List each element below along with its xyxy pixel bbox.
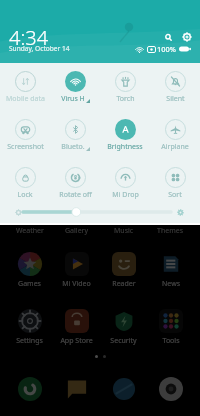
staticText: Music	[114, 226, 134, 235]
staticText: Themes	[157, 226, 184, 235]
button[interactable]: Settings	[178, 28, 195, 45]
staticText: Mobile data	[6, 94, 45, 104]
button[interactable]: Messages	[53, 377, 100, 401]
button[interactable]: Torch	[100, 71, 150, 104]
button[interactable]: Airplane	[150, 119, 200, 152]
staticText: Sunday, October 14	[9, 44, 70, 53]
button[interactable]: Browser	[100, 377, 147, 401]
staticText: Airplane	[161, 142, 189, 152]
staticText: App Store	[60, 336, 93, 346]
staticText: Sort	[168, 190, 182, 200]
button[interactable]: Sort	[150, 167, 200, 200]
button[interactable]: Screenshot	[0, 119, 50, 152]
staticText: Games	[18, 279, 41, 289]
button[interactable]: News	[147, 252, 194, 289]
staticText: Torch	[116, 94, 135, 104]
staticText: Security	[110, 336, 137, 346]
button[interactable]	[21, 206, 173, 218]
button[interactable]: Settings	[6, 309, 53, 346]
staticText: Reader	[112, 279, 136, 289]
button[interactable]: Lock	[0, 167, 50, 200]
button[interactable]: Search	[160, 29, 176, 45]
staticText: Mi Video	[62, 279, 91, 289]
button[interactable]: App Store	[53, 309, 100, 346]
button[interactable]: Rotate off	[50, 167, 100, 200]
staticText: Rotate off	[59, 190, 92, 200]
button[interactable]: Brightness settings	[175, 207, 185, 217]
staticText: 100%	[157, 44, 176, 54]
staticText: Tools	[162, 336, 180, 346]
staticText: Blueto.	[61, 142, 85, 152]
button[interactable]: Security	[100, 309, 147, 346]
staticText: News	[162, 279, 180, 289]
staticText: Mi Drop	[112, 190, 139, 200]
button[interactable]: Blueto.	[50, 119, 100, 152]
staticText: Brightness	[107, 142, 143, 152]
staticText: Settings	[16, 336, 43, 346]
button[interactable]: Mi Drop	[100, 167, 150, 200]
button[interactable]: Phone	[6, 377, 53, 401]
button[interactable]: Reader	[100, 252, 147, 289]
button[interactable]: Mi Video	[53, 252, 100, 289]
button[interactable]: Camera	[147, 377, 194, 401]
staticText: Virus H	[61, 94, 85, 104]
button[interactable]: Silent	[150, 71, 200, 104]
button[interactable]: Tools	[147, 309, 194, 346]
button[interactable]: Mobile data	[0, 71, 50, 104]
staticText: Screenshot	[7, 142, 44, 152]
button[interactable]: Virus H	[50, 71, 100, 104]
staticText: Weather	[16, 226, 44, 235]
staticText: Lock	[17, 190, 33, 200]
button[interactable]: Brightness	[100, 119, 150, 152]
staticText: 4:34	[9, 24, 49, 51]
staticText: Silent	[166, 94, 185, 104]
button[interactable]: Games	[6, 252, 53, 289]
staticText: Gallery	[65, 226, 89, 235]
